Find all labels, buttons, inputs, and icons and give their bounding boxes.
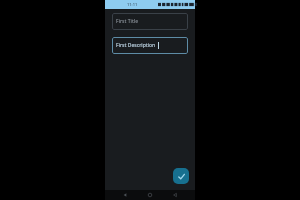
button[interactable]: Save: [173, 168, 189, 184]
button[interactable]: Back: [120, 190, 130, 200]
button[interactable]: First Title: [116, 13, 184, 30]
staticText: First Title: [116, 18, 139, 25]
staticText: 11:11: [127, 2, 138, 7]
button[interactable]: Recents: [170, 190, 180, 200]
button[interactable]: First Description: [116, 37, 184, 54]
staticText: First Description: [116, 42, 156, 49]
button[interactable]: Home: [145, 190, 155, 200]
